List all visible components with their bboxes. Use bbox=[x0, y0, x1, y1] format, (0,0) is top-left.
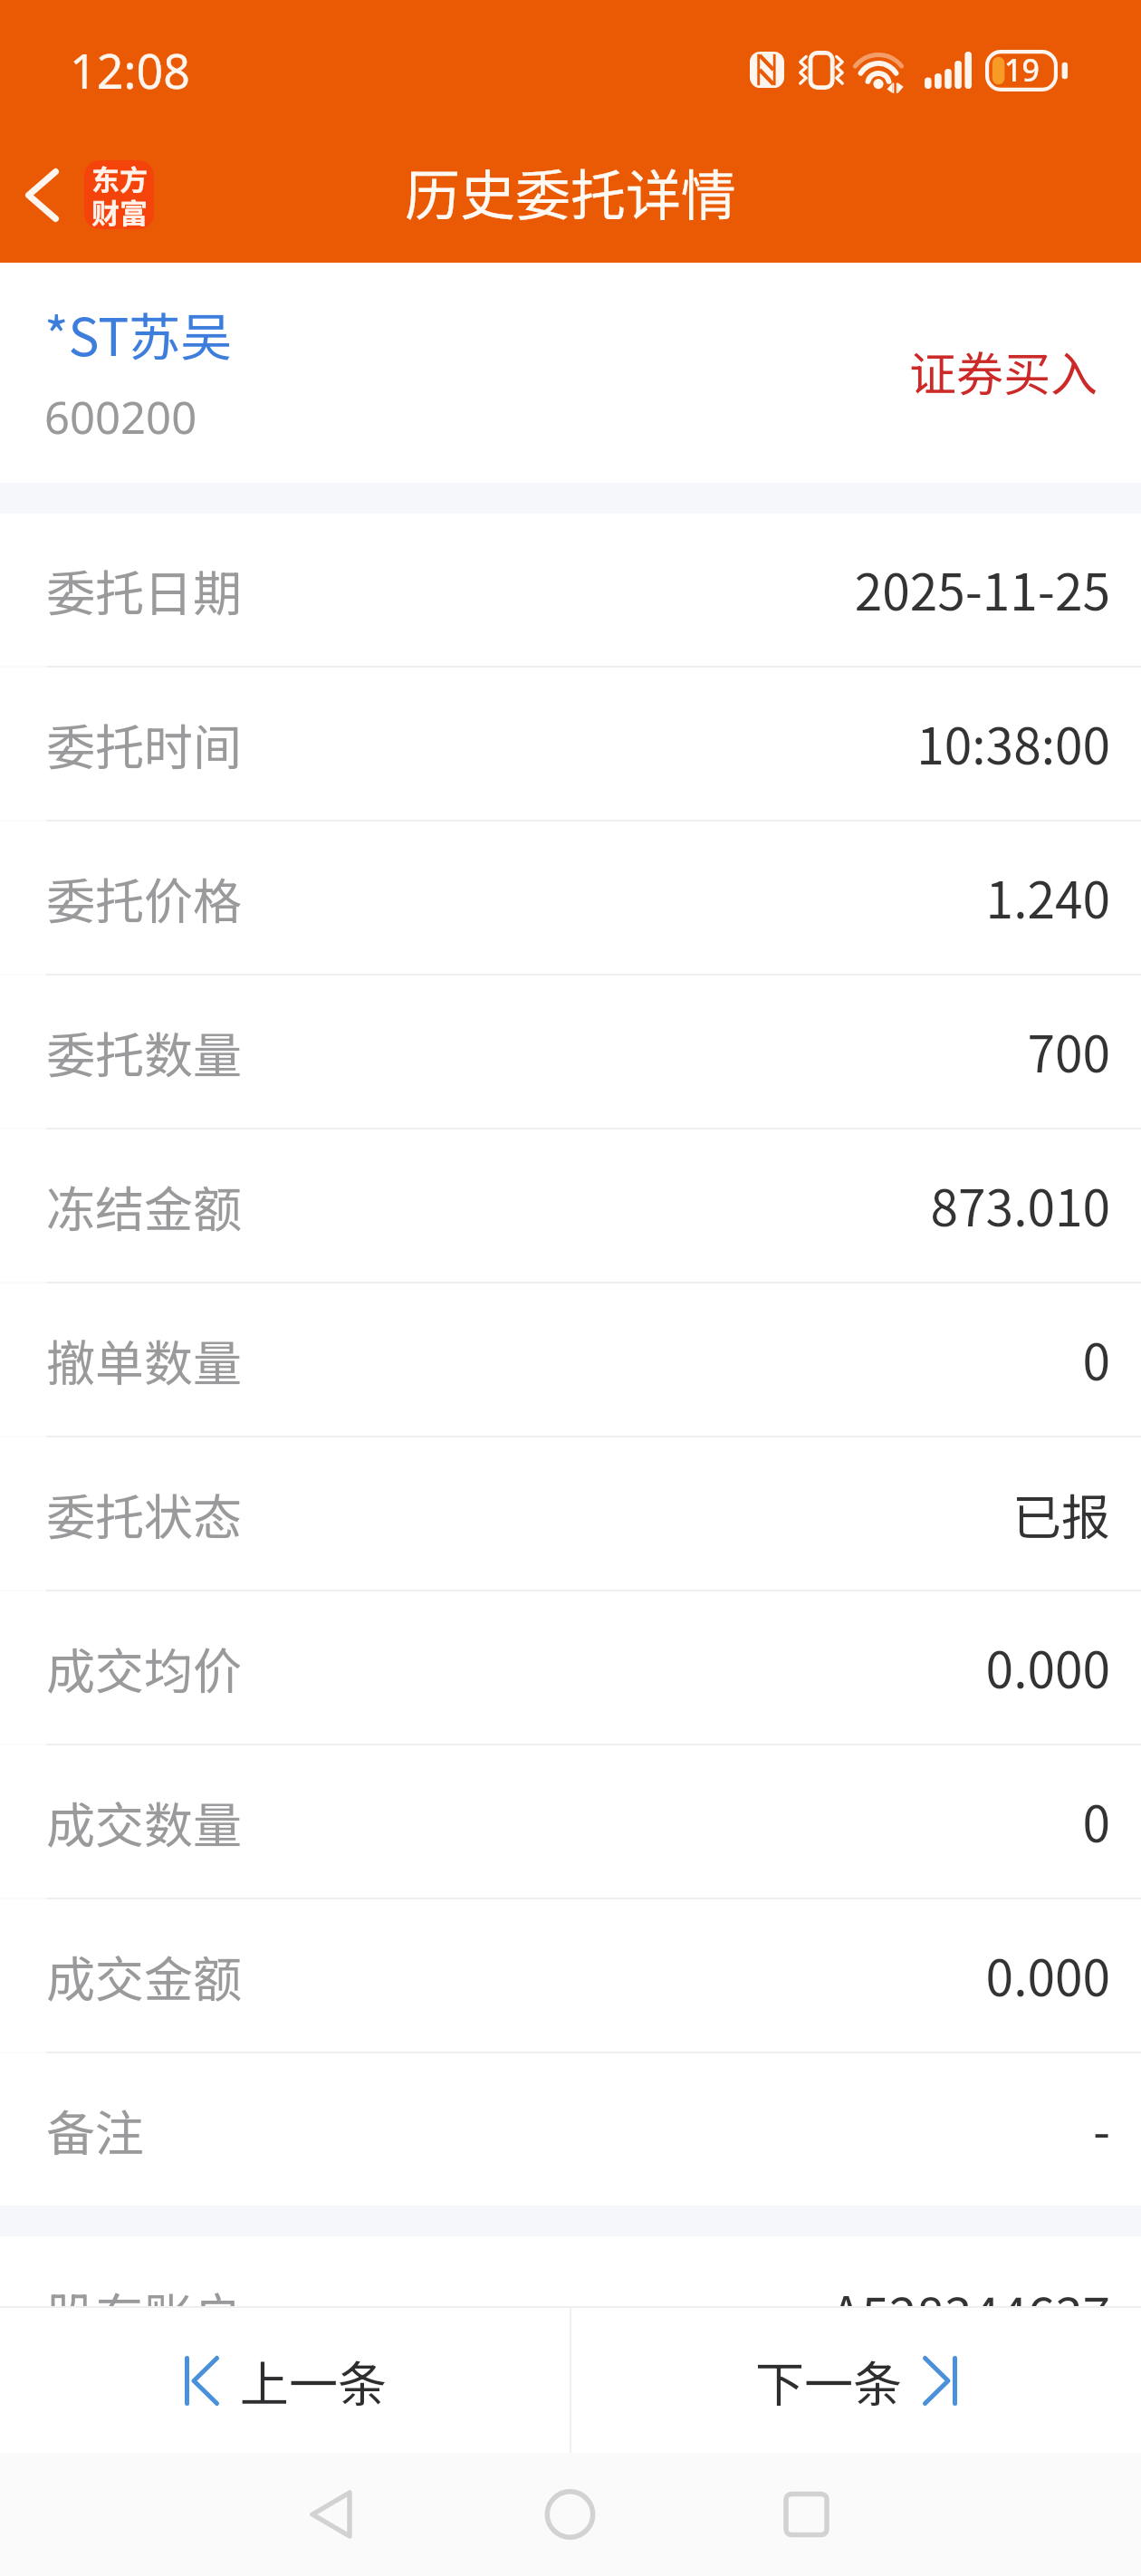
button[interactable]: 撤单数量 bbox=[0, 1283, 1141, 1436]
button[interactable]: Back bbox=[275, 2453, 391, 2576]
button[interactable]: 东方财富 bbox=[84, 160, 154, 229]
staticText: 12:08 bbox=[70, 38, 190, 102]
staticText: 10:38:00 bbox=[916, 706, 1110, 779]
staticText: 0.000 bbox=[985, 1630, 1110, 1703]
staticText: 财富 bbox=[91, 191, 148, 229]
staticText: 0 bbox=[1082, 1322, 1110, 1395]
staticText: 冻结金额 bbox=[46, 1170, 242, 1241]
staticText: 已报 bbox=[1012, 1478, 1110, 1549]
staticText: 上一条 bbox=[240, 2345, 387, 2416]
staticText: 东方 bbox=[91, 160, 148, 198]
staticText: 成交均价 bbox=[46, 1632, 242, 1703]
staticText: 0 bbox=[1082, 1784, 1110, 1857]
staticText: 委托价格 bbox=[46, 862, 242, 933]
button[interactable]: 备注 bbox=[0, 2053, 1141, 2206]
button[interactable]: 冻结金额 bbox=[0, 1129, 1141, 1282]
staticText: 成交数量 bbox=[46, 1786, 242, 1857]
staticText: 委托日期 bbox=[46, 554, 242, 625]
staticText: 委托数量 bbox=[46, 1016, 242, 1087]
staticText: 1.240 bbox=[985, 860, 1110, 933]
staticText: 股东账户 bbox=[46, 2277, 242, 2306]
button[interactable]: Recents bbox=[748, 2453, 864, 2576]
staticText: 2025-11-25 bbox=[854, 553, 1110, 625]
button[interactable]: 成交金额 bbox=[0, 1899, 1141, 2052]
staticText: - bbox=[1092, 2092, 1110, 2165]
staticText: 成交金额 bbox=[46, 1940, 242, 2011]
button[interactable]: Home bbox=[513, 2453, 628, 2576]
button[interactable]: 返回 bbox=[0, 127, 84, 263]
staticText: 下一条 bbox=[755, 2345, 902, 2416]
button[interactable]: 委托日期 bbox=[0, 514, 1141, 666]
button[interactable]: 委托状态 bbox=[0, 1437, 1141, 1590]
staticText: *ST苏吴 bbox=[44, 296, 233, 371]
staticText: 600200 bbox=[44, 387, 197, 447]
button[interactable]: 下一条 bbox=[571, 2308, 1141, 2453]
staticText: 历史委托详情 bbox=[405, 151, 737, 231]
staticText: 撤单数量 bbox=[46, 1324, 242, 1395]
staticText: A528344637 bbox=[830, 2275, 1110, 2306]
staticText: 委托状态 bbox=[46, 1478, 242, 1549]
staticText: 证券买入 bbox=[909, 337, 1098, 405]
staticText: 0.000 bbox=[985, 1938, 1110, 2011]
staticText: 873.010 bbox=[930, 1168, 1110, 1241]
staticText: 700 bbox=[1027, 1014, 1110, 1087]
button[interactable]: 上一条 bbox=[0, 2308, 570, 2453]
button[interactable]: 股东账户 bbox=[0, 2236, 1141, 2306]
button[interactable]: 成交均价 bbox=[0, 1591, 1141, 1744]
staticText: 备注 bbox=[46, 2094, 144, 2165]
staticText: 委托时间 bbox=[46, 708, 242, 779]
button[interactable]: 成交数量 bbox=[0, 1745, 1141, 1898]
button[interactable]: 委托价格 bbox=[0, 822, 1141, 974]
button[interactable]: 委托数量 bbox=[0, 976, 1141, 1128]
button[interactable]: 委托时间 bbox=[0, 668, 1141, 820]
staticText: 19 bbox=[1004, 49, 1040, 91]
